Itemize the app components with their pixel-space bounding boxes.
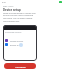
staticText: Backup & sync bbox=[10, 44, 23, 46]
button[interactable]: Google account bbox=[5, 39, 31, 42]
staticText: STEP 1 OF 3 bbox=[3, 5, 14, 8]
staticText: Follow the steps below to connect your a… bbox=[3, 12, 36, 23]
staticText: Connected services bbox=[5, 31, 22, 33]
staticText: Device setup bbox=[3, 8, 21, 12]
staticText: Google account bbox=[10, 40, 24, 42]
button[interactable]: Backup & sync bbox=[5, 43, 31, 46]
button[interactable]: Continue bbox=[4, 63, 36, 69]
staticText: Continue bbox=[15, 65, 26, 68]
staticText: 9:41 bbox=[2, 1, 7, 4]
